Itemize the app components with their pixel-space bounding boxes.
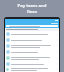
button[interactable] bbox=[5, 55, 59, 61]
button[interactable] bbox=[5, 43, 59, 49]
button[interactable] bbox=[5, 67, 59, 72]
button[interactable]: Search bbox=[6, 25, 58, 27]
button[interactable] bbox=[5, 61, 59, 67]
staticText: Pay taxes and fines bbox=[4, 3, 60, 14]
button[interactable] bbox=[5, 37, 59, 43]
button[interactable] bbox=[5, 31, 59, 37]
button[interactable] bbox=[5, 49, 59, 55]
button[interactable]: Back bbox=[6, 23, 8, 25]
